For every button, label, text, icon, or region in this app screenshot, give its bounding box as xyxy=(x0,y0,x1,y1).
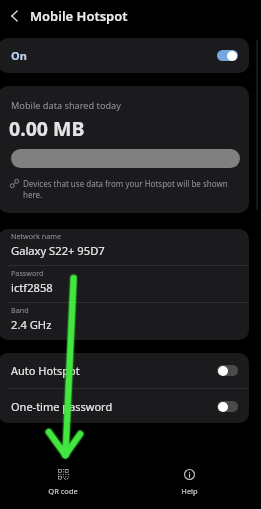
staticText: QR code xyxy=(48,486,78,496)
button[interactable]: Password xyxy=(0,266,249,303)
staticText: Devices that use data from your Hotspot … xyxy=(23,178,241,200)
button[interactable]: Back xyxy=(0,1,30,31)
staticText: Band xyxy=(11,305,29,315)
staticText: One-time password xyxy=(11,399,113,414)
button[interactable]: Turn on xyxy=(217,401,238,412)
button[interactable]: One-time password xyxy=(0,389,249,423)
button[interactable]: Band xyxy=(0,303,249,340)
staticText: Help xyxy=(181,486,198,496)
staticText: ictf2858 xyxy=(11,280,53,295)
staticText: Mobile Hotspot xyxy=(30,7,128,25)
button[interactable]: Turn off xyxy=(217,50,238,61)
staticText: Password xyxy=(11,268,44,278)
button[interactable]: Turn on xyxy=(217,365,238,376)
staticText: 2.4 GHz xyxy=(11,317,52,332)
staticText: Mobile data shared today xyxy=(11,99,121,112)
button[interactable]: Auto Hotspot xyxy=(0,353,249,388)
staticText: Auto Hotspot xyxy=(11,363,80,378)
button[interactable]: On xyxy=(0,38,249,73)
staticText: On xyxy=(11,48,27,63)
staticText: Galaxy S22+ 95D7 xyxy=(11,243,105,258)
button[interactable]: Network name xyxy=(0,229,249,266)
staticText: 0.00 MB xyxy=(9,115,85,142)
button[interactable]: Help xyxy=(126,461,253,503)
button[interactable]: QR code xyxy=(0,461,126,503)
staticText: Network name xyxy=(11,231,62,241)
